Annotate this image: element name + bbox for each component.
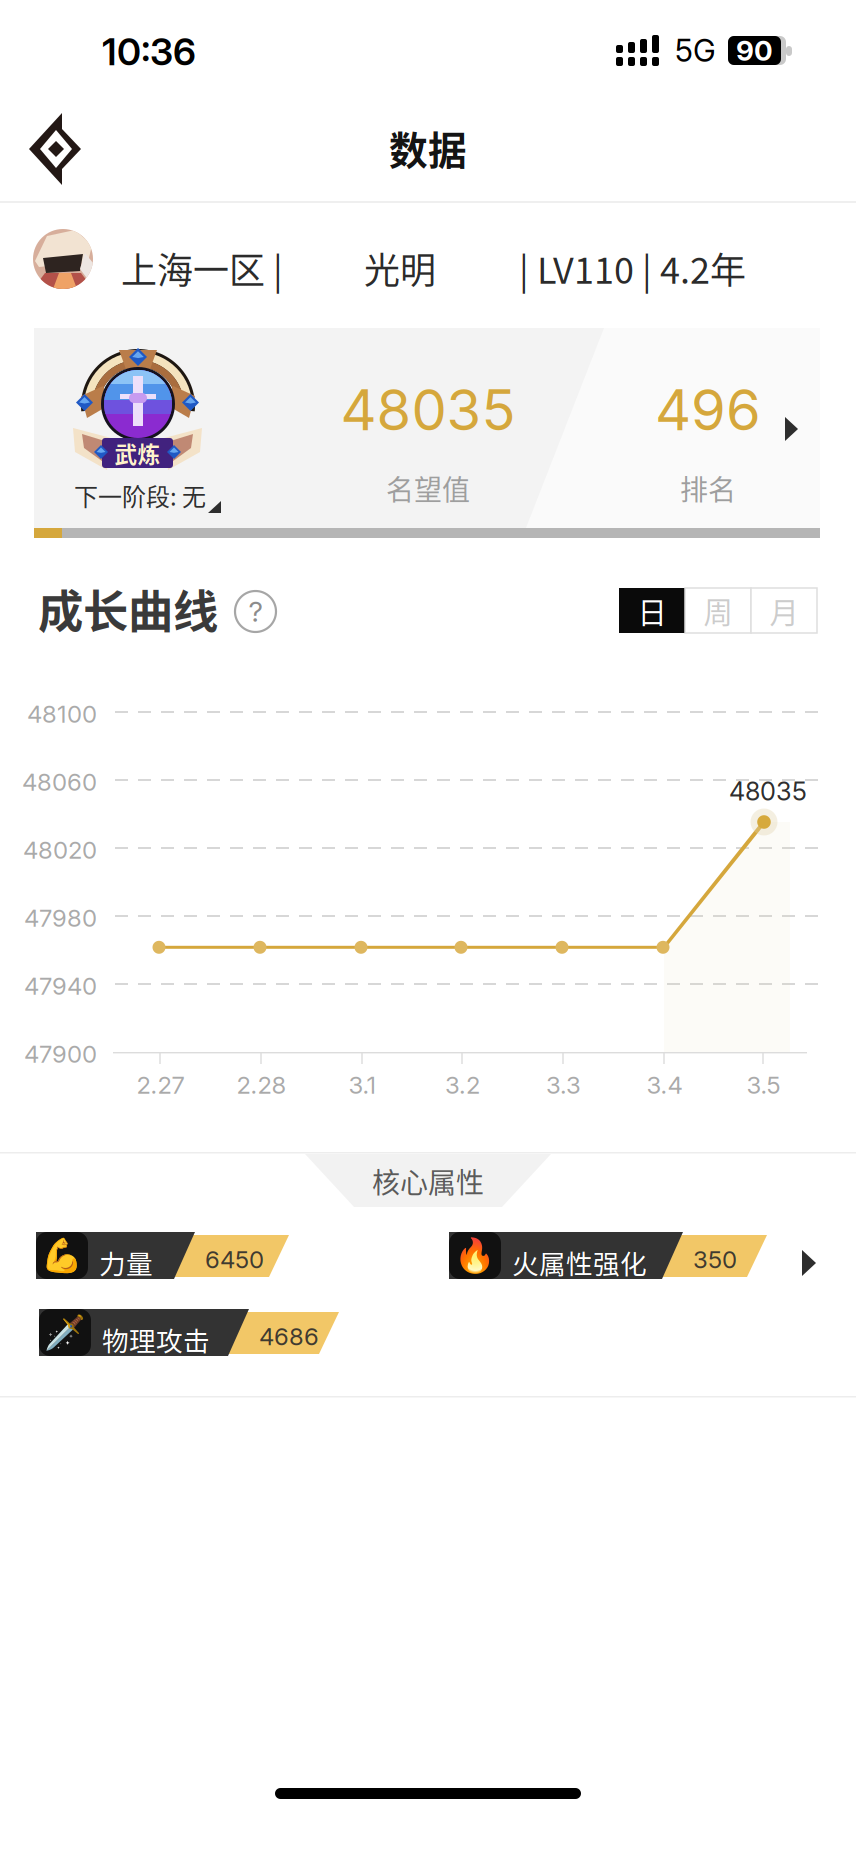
staticText: 上海一区 | bbox=[121, 242, 283, 294]
button[interactable]: 武炼 bbox=[34, 328, 820, 538]
staticText: 力量 bbox=[99, 1243, 153, 1282]
staticText: 成长曲线 bbox=[38, 576, 218, 642]
staticText: 10:36 bbox=[102, 29, 196, 74]
staticText: 下一阶段: 无 bbox=[74, 478, 206, 513]
staticText: 496 bbox=[655, 376, 761, 444]
staticText: 月 bbox=[769, 589, 798, 632]
staticText: 名望值 bbox=[386, 468, 470, 508]
button[interactable]: Home bbox=[10, 108, 100, 190]
staticText: 48060 bbox=[22, 767, 97, 796]
staticText: 物理攻击 bbox=[102, 1320, 210, 1359]
staticText: 48035 bbox=[729, 776, 807, 807]
staticText: 47940 bbox=[24, 971, 97, 1000]
staticText: 2.28 bbox=[236, 1070, 286, 1099]
button[interactable]: 周 bbox=[685, 588, 751, 633]
staticText: 周 bbox=[703, 589, 732, 632]
staticText: 3.5 bbox=[746, 1070, 780, 1099]
staticText: ? bbox=[248, 595, 262, 628]
button[interactable]: 日 bbox=[619, 588, 685, 633]
staticText: 48020 bbox=[23, 835, 97, 864]
staticText: 排名 bbox=[680, 468, 736, 508]
staticText: 3.4 bbox=[646, 1070, 682, 1099]
staticText: 4686 bbox=[259, 1322, 319, 1351]
button[interactable]: 月 bbox=[751, 588, 817, 633]
staticText: 💪 bbox=[41, 1236, 83, 1275]
staticText: 47980 bbox=[24, 903, 97, 932]
staticText: 3.2 bbox=[445, 1070, 480, 1099]
staticText: 日 bbox=[637, 589, 666, 632]
button[interactable]: 上海一区 | bbox=[0, 203, 856, 313]
staticText: | LV110 | 4.2年 bbox=[519, 242, 746, 294]
button[interactable]: 💪 bbox=[36, 1232, 289, 1282]
button[interactable]: 🗡 bbox=[39, 1309, 339, 1359]
staticText: 武炼 bbox=[114, 437, 160, 469]
staticText: 光明 bbox=[364, 242, 436, 294]
button[interactable]: 🔥 bbox=[449, 1232, 767, 1282]
staticText: 3.3 bbox=[546, 1070, 581, 1099]
staticText: 🗡 bbox=[44, 1313, 86, 1352]
staticText: 350 bbox=[693, 1245, 737, 1274]
staticText: 48100 bbox=[27, 699, 97, 728]
staticText: 48035 bbox=[340, 376, 515, 444]
staticText: 🔥 bbox=[454, 1236, 496, 1275]
staticText: 6450 bbox=[205, 1245, 264, 1274]
staticText: 47900 bbox=[24, 1039, 97, 1068]
button[interactable]: Help bbox=[235, 591, 276, 632]
staticText: 90 bbox=[736, 34, 773, 67]
staticText: 数据 bbox=[389, 120, 467, 176]
staticText: 核心属性 bbox=[372, 1161, 484, 1201]
button[interactable]: More attributes bbox=[802, 1250, 820, 1280]
staticText: 2.27 bbox=[136, 1070, 184, 1099]
staticText: 火属性强化 bbox=[512, 1243, 647, 1282]
staticText: 3.1 bbox=[348, 1070, 376, 1099]
staticText: 5G bbox=[675, 32, 716, 69]
